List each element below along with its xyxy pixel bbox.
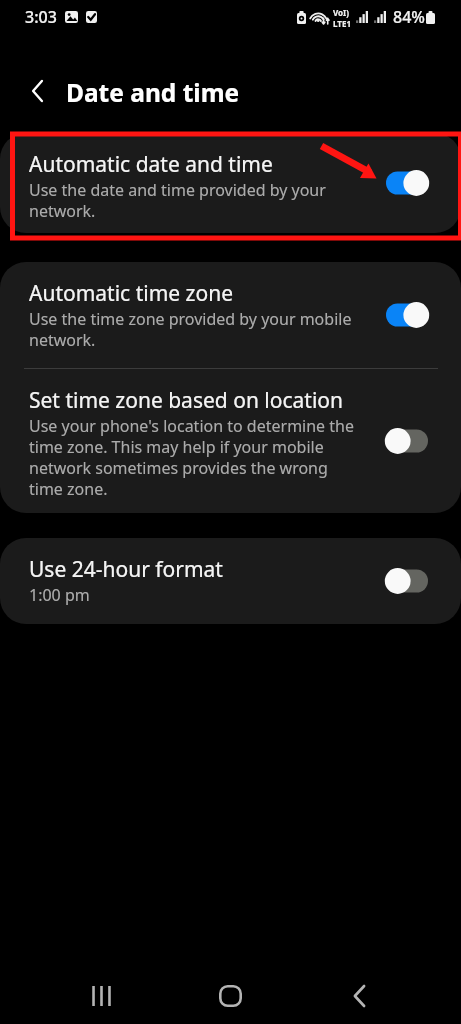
staticText: Set time zone based on location: [29, 386, 343, 415]
staticText: 84%: [393, 6, 425, 28]
staticText: Automatic date and time: [29, 150, 273, 179]
staticText: Date and time: [66, 76, 240, 109]
button[interactable]: Automatic time zone: [0, 262, 461, 368]
button[interactable]: Navigate up: [13, 67, 61, 115]
staticText: Use the date and time provided by your n…: [29, 179, 354, 222]
button[interactable]: Disabled: [384, 426, 430, 456]
button[interactable]: Home: [206, 972, 254, 1020]
staticText: Use 24-hour format: [29, 555, 223, 584]
button[interactable]: Set time zone based on location: [0, 369, 461, 513]
button[interactable]: Disabled: [384, 566, 430, 596]
staticText: 3:03: [25, 6, 57, 28]
button[interactable]: Back: [335, 972, 383, 1020]
staticText: Use the time zone provided by your mobil…: [29, 308, 354, 351]
button[interactable]: Recent apps: [77, 972, 125, 1020]
staticText: LTE1: [333, 18, 351, 29]
button[interactable]: Automatic date and time: [0, 133, 461, 233]
staticText: Automatic time zone: [29, 279, 233, 308]
button[interactable]: Use 24-hour format: [0, 538, 461, 624]
staticText: 1:00 pm: [29, 584, 90, 606]
button[interactable]: Enabled: [384, 168, 430, 198]
button[interactable]: Enabled: [384, 300, 430, 330]
staticText: VoI): [333, 7, 349, 18]
staticText: Use your phone's location to determine t…: [29, 415, 354, 500]
